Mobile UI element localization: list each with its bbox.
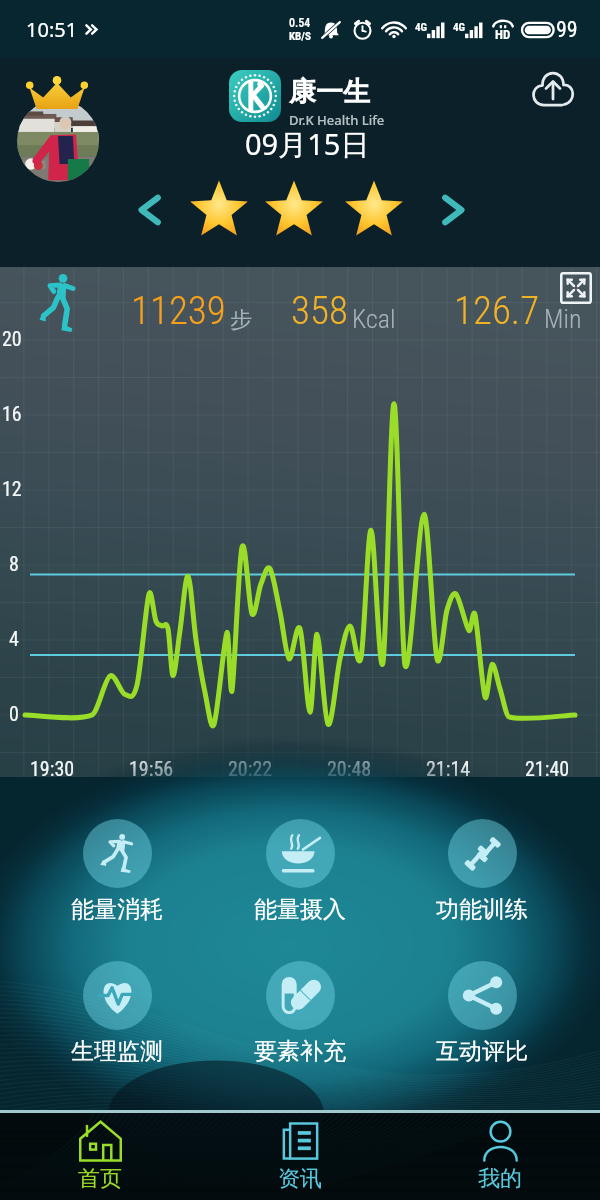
staticText: 19:30 (30, 757, 75, 780)
staticText: 0 (9, 702, 19, 725)
staticText: 21:14 (426, 757, 471, 780)
button[interactable]: 我的 (400, 1110, 600, 1200)
staticText: 互动评比 (436, 1037, 528, 1066)
staticText: 4G (453, 21, 465, 34)
staticText: 358 (291, 288, 348, 334)
staticText: 要素补充 (254, 1037, 346, 1066)
staticText: 4G (415, 21, 427, 34)
staticText: 0.54 (289, 16, 311, 30)
button[interactable]: 能量消耗 (59, 819, 175, 924)
staticText: 能量摄入 (254, 895, 346, 924)
staticText: 21:40 (525, 757, 570, 780)
staticText: Kcal (352, 304, 396, 334)
staticText: 20:48 (327, 757, 372, 780)
staticText: 09月15日 (245, 124, 370, 164)
button[interactable]: 生理监测 (59, 961, 175, 1066)
button[interactable]: 要素补充 (242, 961, 358, 1066)
button[interactable]: 功能训练 (424, 819, 540, 924)
button[interactable]: 首页 (0, 1110, 200, 1200)
staticText: 16 (2, 402, 22, 425)
staticText: 资讯 (278, 1165, 322, 1193)
button[interactable]: 互动评比 (424, 961, 540, 1066)
staticText: 20:22 (228, 757, 273, 780)
staticText: 99 (556, 17, 578, 43)
button[interactable]: 资讯 (200, 1110, 400, 1200)
button[interactable]: Profile (17, 100, 99, 182)
staticText: KB/S (289, 30, 311, 43)
staticText: 步 (230, 306, 252, 334)
button[interactable]: Next day (432, 188, 476, 232)
staticText: 12 (2, 477, 22, 500)
button[interactable]: Previous day (127, 188, 171, 232)
staticText: 首页 (78, 1165, 122, 1193)
button[interactable]: 能量摄入 (242, 819, 358, 924)
staticText: Min (544, 304, 582, 334)
button[interactable]: Fullscreen (560, 272, 592, 304)
staticText: 11239 (131, 288, 226, 334)
staticText: 4 (9, 627, 19, 650)
staticText: 能量消耗 (71, 895, 163, 924)
staticText: 126.7 (454, 288, 540, 334)
staticText: 20 (2, 327, 22, 350)
staticText: 8 (9, 552, 19, 575)
staticText: 19:56 (129, 757, 174, 780)
staticText: 我的 (478, 1165, 522, 1193)
staticText: 功能训练 (436, 895, 528, 924)
staticText: HD (495, 27, 511, 42)
staticText: 康一生 (289, 75, 370, 109)
staticText: 10:51 (26, 16, 78, 43)
staticText: Dr.K Health Life (289, 111, 385, 129)
button[interactable]: Upload to cloud (528, 66, 578, 116)
staticText: 生理监测 (71, 1037, 163, 1066)
